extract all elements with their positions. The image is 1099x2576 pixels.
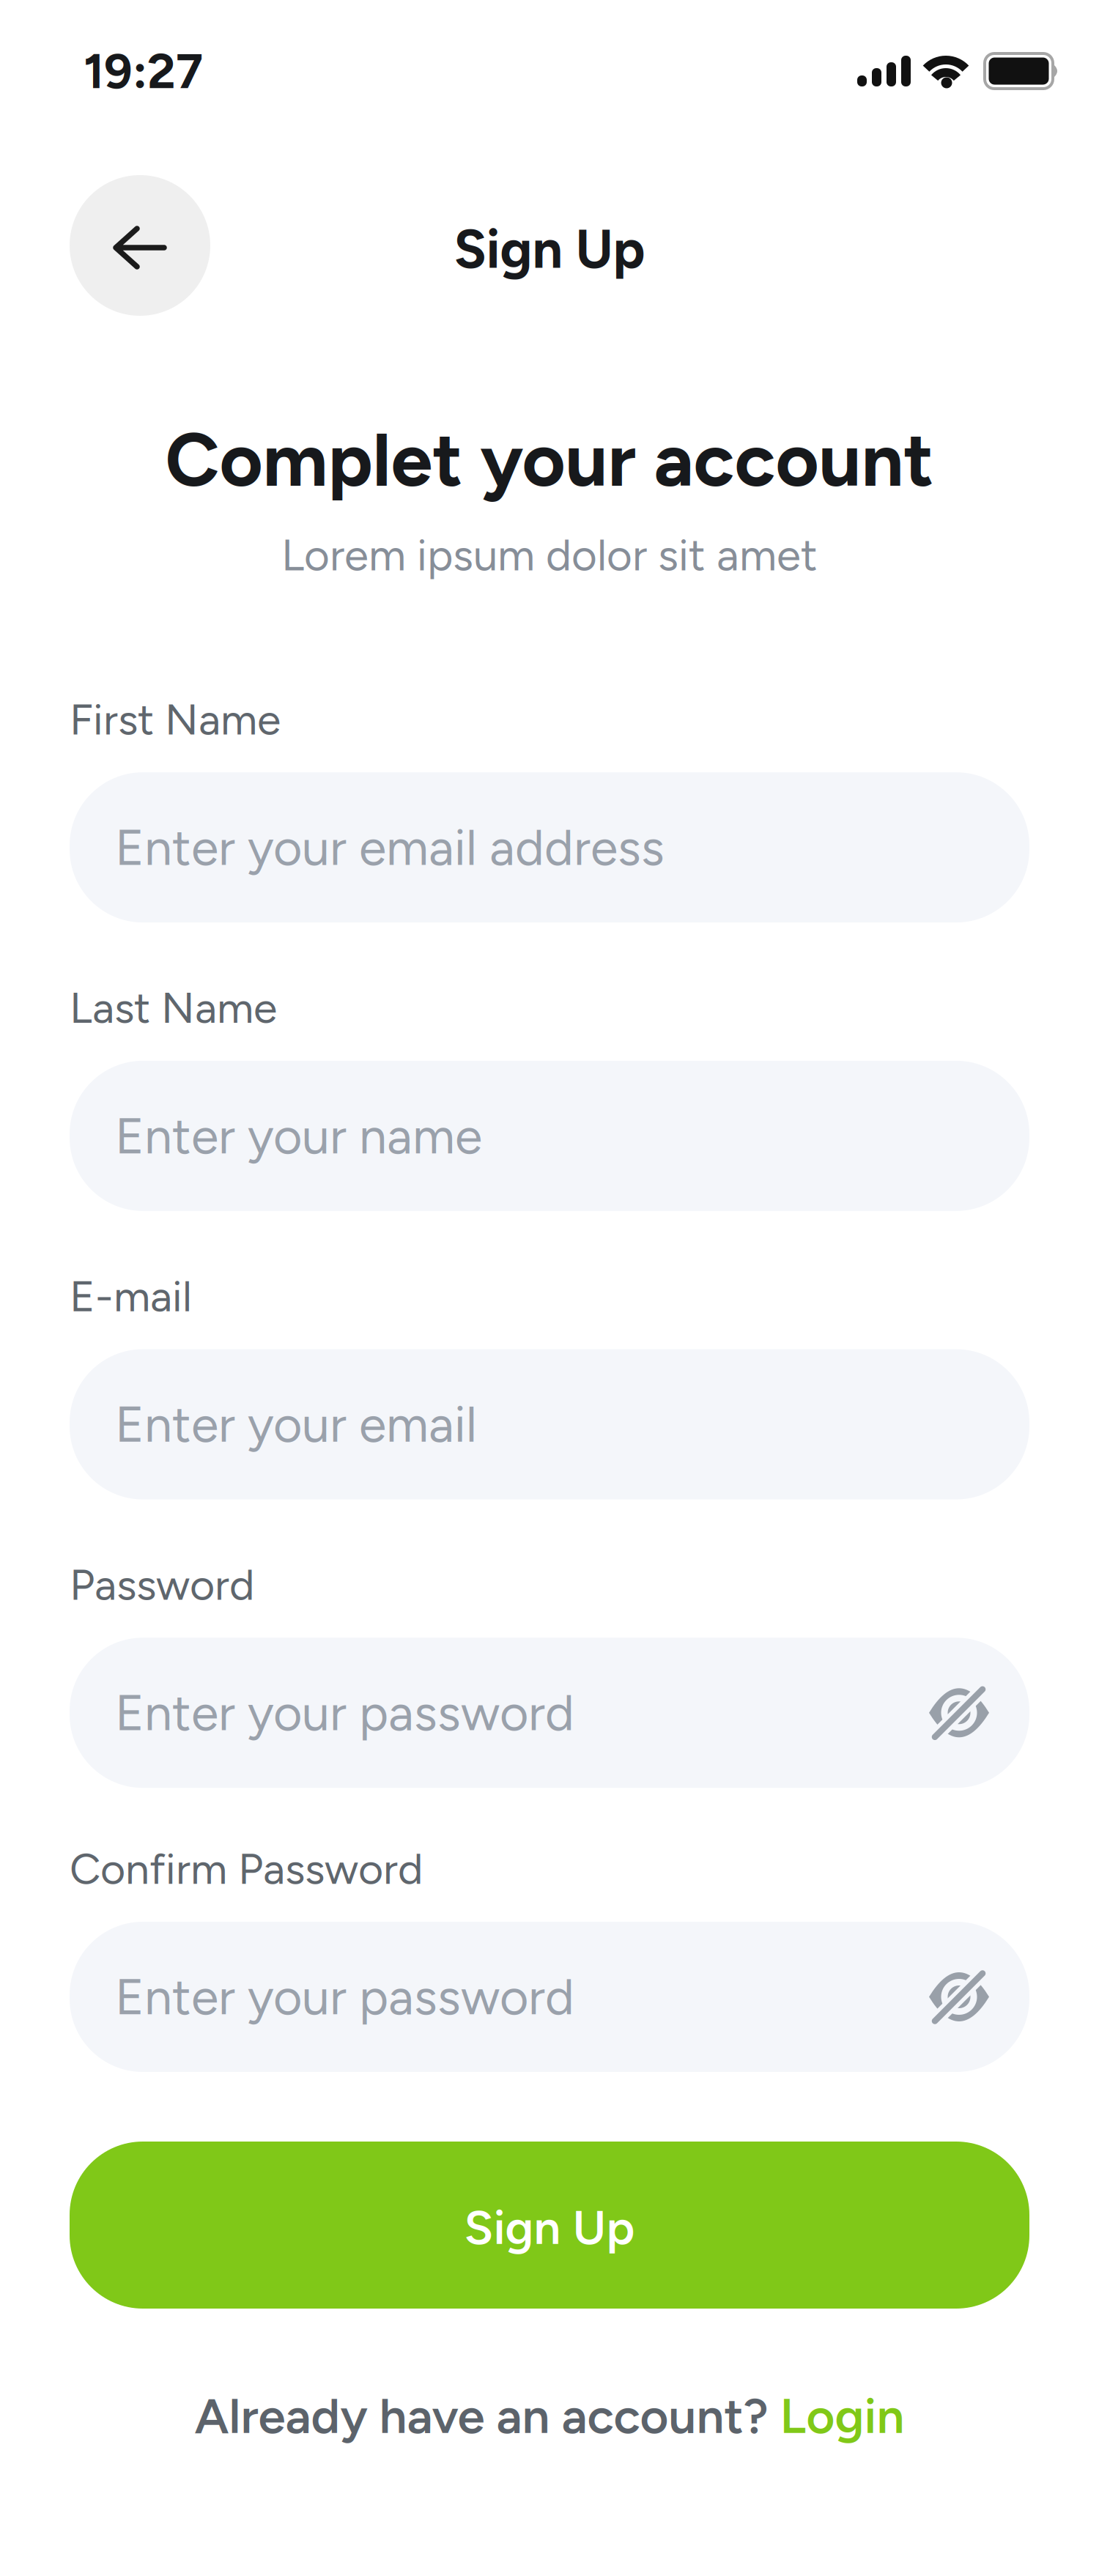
staticText: Confirm Password [70, 1843, 423, 1895]
staticText: E-mail [70, 1270, 192, 1322]
staticText: Enter your password [115, 1683, 574, 1743]
staticText: Enter your password [115, 1967, 574, 2027]
staticText: Complet your account [165, 415, 934, 504]
staticText: First Name [70, 693, 281, 745]
staticText: Password [70, 1559, 255, 1611]
staticText: Sign Up [464, 2199, 635, 2256]
button[interactable]: Show password [928, 1688, 990, 1738]
staticText: Sign Up [454, 217, 645, 281]
staticText: Lorem ipsum dolor sit amet [281, 529, 818, 581]
staticText: 19:27 [84, 42, 203, 100]
staticText: Enter your email address [115, 817, 665, 877]
staticText: Last Name [70, 982, 277, 1034]
staticText: Enter your name [115, 1106, 482, 1166]
button[interactable]: Show password [928, 1972, 990, 2022]
staticText: Already have an account? [195, 2386, 768, 2445]
staticText: Login [780, 2386, 904, 2445]
staticText: Enter your email [115, 1394, 477, 1454]
button[interactable]: Login [780, 2386, 904, 2445]
button[interactable]: Sign Up [70, 2142, 1029, 2309]
button[interactable]: Back [70, 175, 210, 316]
